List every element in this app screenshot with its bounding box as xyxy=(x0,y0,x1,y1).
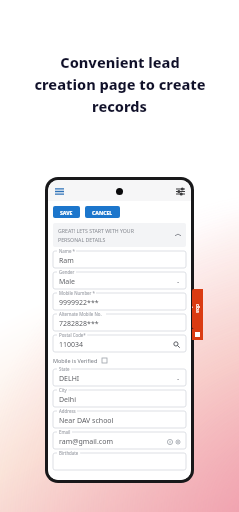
staticText: Mobile is Verified xyxy=(53,357,98,364)
staticText: State xyxy=(59,366,70,372)
staticText: Name * xyxy=(59,248,75,254)
staticText: creation page to create xyxy=(34,74,206,94)
button[interactable]: City xyxy=(53,390,186,407)
staticText: Alternate Mobile No. xyxy=(59,311,102,317)
button[interactable]: Close feedback xyxy=(192,329,203,340)
button[interactable]: Feedback xyxy=(192,289,203,329)
button[interactable]: Postal Code* xyxy=(53,335,186,352)
button[interactable]: Mobile is Verified xyxy=(53,357,186,364)
staticText: 110034 xyxy=(59,340,84,350)
button[interactable]: Name * xyxy=(53,251,186,268)
staticText: Near DAV school xyxy=(59,416,114,426)
staticText: Convenient lead xyxy=(60,52,180,72)
button[interactable]: Address xyxy=(53,411,186,428)
button[interactable]: Birthdate xyxy=(53,453,186,470)
staticText: 7282828*** xyxy=(59,319,99,329)
staticText: ram@gmail.com xyxy=(59,437,113,447)
button[interactable]: Menu xyxy=(53,185,65,197)
staticText: CANCEL xyxy=(92,209,113,216)
staticText: Feedback xyxy=(192,304,203,315)
staticText: Mobile Number * xyxy=(59,290,95,296)
button[interactable]: GREAT! LETS START WITH YOUR xyxy=(53,223,186,247)
staticText: DELHI xyxy=(59,374,80,384)
staticText: Male xyxy=(59,277,76,287)
staticText: Gender xyxy=(59,269,75,275)
staticText: Email xyxy=(59,429,71,435)
staticText: - xyxy=(177,277,180,287)
button[interactable]: Gender xyxy=(53,272,186,289)
staticText: PERSONAL DETAILS xyxy=(58,236,106,243)
staticText: 9999922*** xyxy=(59,298,99,308)
staticText: Postal Code* xyxy=(59,332,86,338)
staticText: Birthdate xyxy=(59,450,79,456)
staticText: Ram xyxy=(59,256,74,266)
staticText: - xyxy=(177,374,180,384)
button[interactable]: CANCEL xyxy=(85,206,120,218)
staticText: City xyxy=(59,387,67,393)
staticText: records xyxy=(92,96,147,116)
staticText: GREAT! LETS START WITH YOUR xyxy=(58,227,134,234)
button[interactable]: SAVE xyxy=(53,206,80,218)
button[interactable]: Alternate Mobile No. xyxy=(53,314,186,331)
staticText: Delhi xyxy=(59,395,76,405)
button[interactable]: Filter xyxy=(174,185,186,197)
staticText: SAVE xyxy=(60,209,73,216)
staticText: Address xyxy=(59,408,76,414)
button[interactable]: Email xyxy=(53,432,186,449)
button[interactable]: Mobile Number * xyxy=(53,293,186,310)
button[interactable]: State xyxy=(53,369,186,386)
